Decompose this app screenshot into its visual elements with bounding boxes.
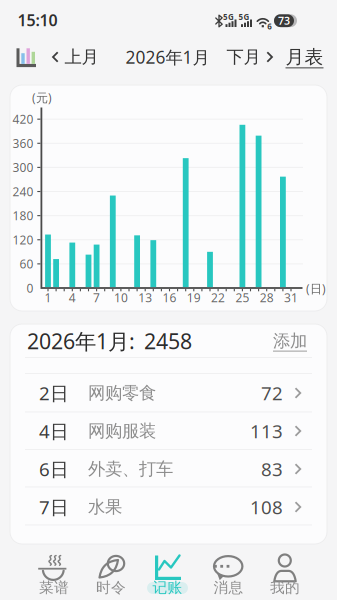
staticText: 下月 <box>226 46 260 68</box>
staticText: 我的 <box>270 578 300 596</box>
button[interactable]: 消息 <box>196 551 260 599</box>
staticText: 5G <box>223 12 234 22</box>
staticText: 300 <box>12 159 33 175</box>
button[interactable]: 下月 <box>226 46 273 68</box>
button[interactable]: 上月 <box>51 46 98 68</box>
staticText: 420 <box>12 111 33 127</box>
staticText: 7日 <box>39 495 69 519</box>
staticText: 2026年1月 <box>125 45 209 68</box>
staticText: 13 <box>138 289 152 305</box>
button[interactable]: 4日 <box>10 412 327 450</box>
staticText: 113 <box>250 419 283 443</box>
button[interactable]: 7日 <box>10 488 327 526</box>
button[interactable]: 我的 <box>253 551 317 599</box>
staticText: 73 <box>278 14 290 28</box>
button[interactable]: 菜谱 <box>22 551 86 599</box>
staticText: 28 <box>260 289 274 305</box>
button[interactable]: 添加 <box>273 330 307 352</box>
staticText: 上月 <box>64 46 98 68</box>
staticText: 2日 <box>39 381 69 405</box>
staticText: 60 <box>19 256 33 272</box>
staticText: 4 <box>69 289 76 305</box>
staticText: 时令 <box>96 578 126 596</box>
staticText: 31 <box>284 289 298 305</box>
staticText: 1 <box>44 289 51 305</box>
staticText: 2026年1月: <box>27 327 135 355</box>
staticText: 7 <box>93 289 100 305</box>
staticText: 菜谱 <box>39 578 69 596</box>
staticText: 180 <box>12 208 33 224</box>
staticText: 网购零食 <box>88 382 156 404</box>
staticText: 108 <box>250 495 283 519</box>
staticText: 消息 <box>213 578 243 596</box>
staticText: 360 <box>12 135 33 151</box>
staticText: 6 <box>267 21 272 32</box>
staticText: 10 <box>114 289 128 305</box>
staticText: 外卖、打车 <box>88 458 173 480</box>
staticText: 16 <box>162 289 176 305</box>
button[interactable]: 月表 <box>285 45 323 68</box>
staticText: 添加 <box>273 330 307 352</box>
staticText: 22 <box>211 289 225 305</box>
staticText: 72 <box>261 381 283 405</box>
staticText: 0 <box>26 280 33 296</box>
staticText: 月表 <box>285 45 323 68</box>
button[interactable]: 6日 <box>10 450 327 488</box>
staticText: 记账 <box>152 578 182 596</box>
staticText: (日) <box>306 280 326 296</box>
button[interactable]: 记账 <box>135 551 199 599</box>
staticText: 4日 <box>39 419 69 443</box>
staticText: 15:10 <box>17 9 57 31</box>
button[interactable]: 时令 <box>79 551 143 599</box>
staticText: 网购服装 <box>88 420 156 442</box>
staticText: 5G <box>238 12 249 22</box>
staticText: 120 <box>12 232 33 248</box>
staticText: 25 <box>235 289 249 305</box>
staticText: (元) <box>32 89 52 105</box>
button[interactable]: 2日 <box>10 374 327 412</box>
staticText: 6日 <box>39 457 69 481</box>
button[interactable] <box>15 45 37 67</box>
staticText: 水果 <box>88 496 122 518</box>
staticText: 2458 <box>144 327 192 355</box>
staticText: 83 <box>261 457 283 481</box>
staticText: 19 <box>187 289 201 305</box>
staticText: 240 <box>12 184 33 199</box>
